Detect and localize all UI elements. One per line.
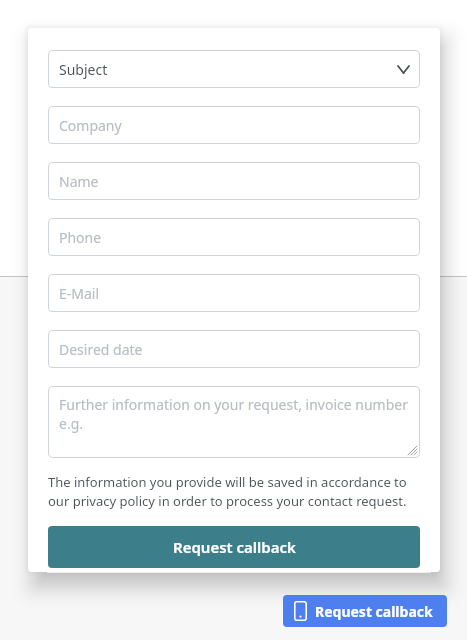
button[interactable]: Request callback <box>48 526 420 568</box>
staticText: Request callback <box>173 537 296 557</box>
staticText: Name <box>59 172 99 191</box>
staticText: Phone <box>59 228 102 247</box>
staticText: Request callback <box>315 602 433 621</box>
button[interactable]: Desired date <box>48 330 420 368</box>
other: Phone <box>294 601 307 621</box>
button[interactable]: Company <box>48 106 420 144</box>
staticText: Subject <box>59 60 108 79</box>
button[interactable]: Name <box>48 162 420 200</box>
staticText: e.g. <box>59 414 84 433</box>
button[interactable]: Further information on your request, inv… <box>48 386 420 458</box>
button[interactable]: Phone <box>48 218 420 256</box>
staticText: E-Mail <box>59 284 100 303</box>
button[interactable]: Subject <box>48 50 420 88</box>
staticText: The information you provide will be save… <box>48 473 420 510</box>
staticText: Further information on your request, inv… <box>59 395 408 414</box>
staticText: Company <box>59 116 122 135</box>
staticText: Desired date <box>59 340 143 359</box>
button[interactable]: Phone <box>283 595 447 627</box>
button[interactable]: E-Mail <box>48 274 420 312</box>
